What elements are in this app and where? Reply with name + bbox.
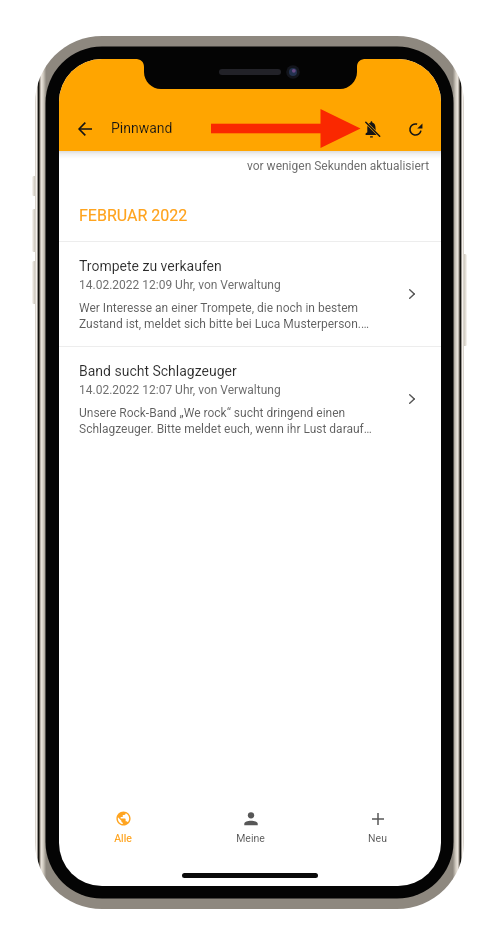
button[interactable]: Band sucht Schlagzeuger [59,347,441,451]
staticText: Pinnwand [111,120,173,136]
button[interactable]: Neu [314,795,441,850]
staticText: Wer Interesse an einer Trompete, die noc… [79,301,359,315]
staticText: Meine [236,832,265,844]
button[interactable]: Benachrichtigungen stummschalten [351,108,393,150]
button[interactable]: Aktualisieren [394,108,436,150]
button[interactable]: Meine [187,795,314,850]
staticText: Zustand ist, meldet sich bitte bei Luca … [79,317,370,331]
button[interactable]: Trompete zu verkaufen [59,242,441,346]
staticText: Neu [368,832,387,844]
button[interactable]: Alle [59,795,187,850]
staticText: FEBRUAR 2022 [79,206,188,225]
staticText: vor wenigen Sekunden aktualisiert [247,159,430,173]
staticText: 14.02.2022 12:07 Uhr, von Verwaltung [79,383,281,397]
staticText: 14.02.2022 12:09 Uhr, von Verwaltung [79,278,281,292]
staticText: Band sucht Schlagzeuger [79,363,237,379]
staticText: Schlagzeuger. Bitte meldet euch, wenn ih… [79,422,372,436]
staticText: Unsere Rock-Band „We rock“ sucht dringen… [79,406,346,420]
button[interactable]: Zurück [62,106,108,152]
staticText: Trompete zu verkaufen [79,258,222,274]
staticText: Alle [114,832,132,844]
